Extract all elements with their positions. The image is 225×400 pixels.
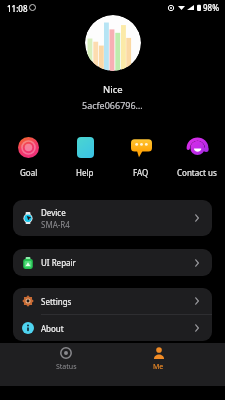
staticText: UI Repair bbox=[41, 257, 76, 268]
staticText: Status bbox=[56, 362, 77, 372]
button[interactable]: FAQ bbox=[113, 137, 169, 178]
button[interactable]: UI Repair bbox=[13, 249, 212, 276]
button[interactable]: Settings bbox=[13, 288, 212, 314]
staticText: 5acfe066796… bbox=[82, 99, 143, 111]
staticText: SMA-R4 bbox=[41, 219, 70, 230]
button[interactable]: About bbox=[13, 315, 212, 341]
button[interactable]: Contact us bbox=[169, 137, 225, 178]
staticText: Settings bbox=[41, 296, 72, 307]
button[interactable]: Status bbox=[20, 343, 112, 372]
staticText: Device bbox=[41, 207, 66, 218]
staticText: FAQ bbox=[133, 167, 149, 178]
staticText: About bbox=[41, 323, 64, 334]
staticText: 98% bbox=[203, 2, 219, 13]
staticText: 11:08 bbox=[7, 3, 28, 14]
button[interactable]: Help bbox=[57, 137, 113, 178]
staticText: Contact us bbox=[177, 167, 217, 178]
staticText: Nice bbox=[103, 83, 123, 96]
button[interactable]: Goal bbox=[0, 137, 57, 178]
button[interactable]: Device bbox=[13, 200, 212, 236]
staticText: Me bbox=[153, 362, 164, 372]
staticText: Help bbox=[76, 167, 94, 178]
staticText: Goal bbox=[20, 167, 38, 178]
button[interactable]: Me bbox=[112, 343, 205, 372]
